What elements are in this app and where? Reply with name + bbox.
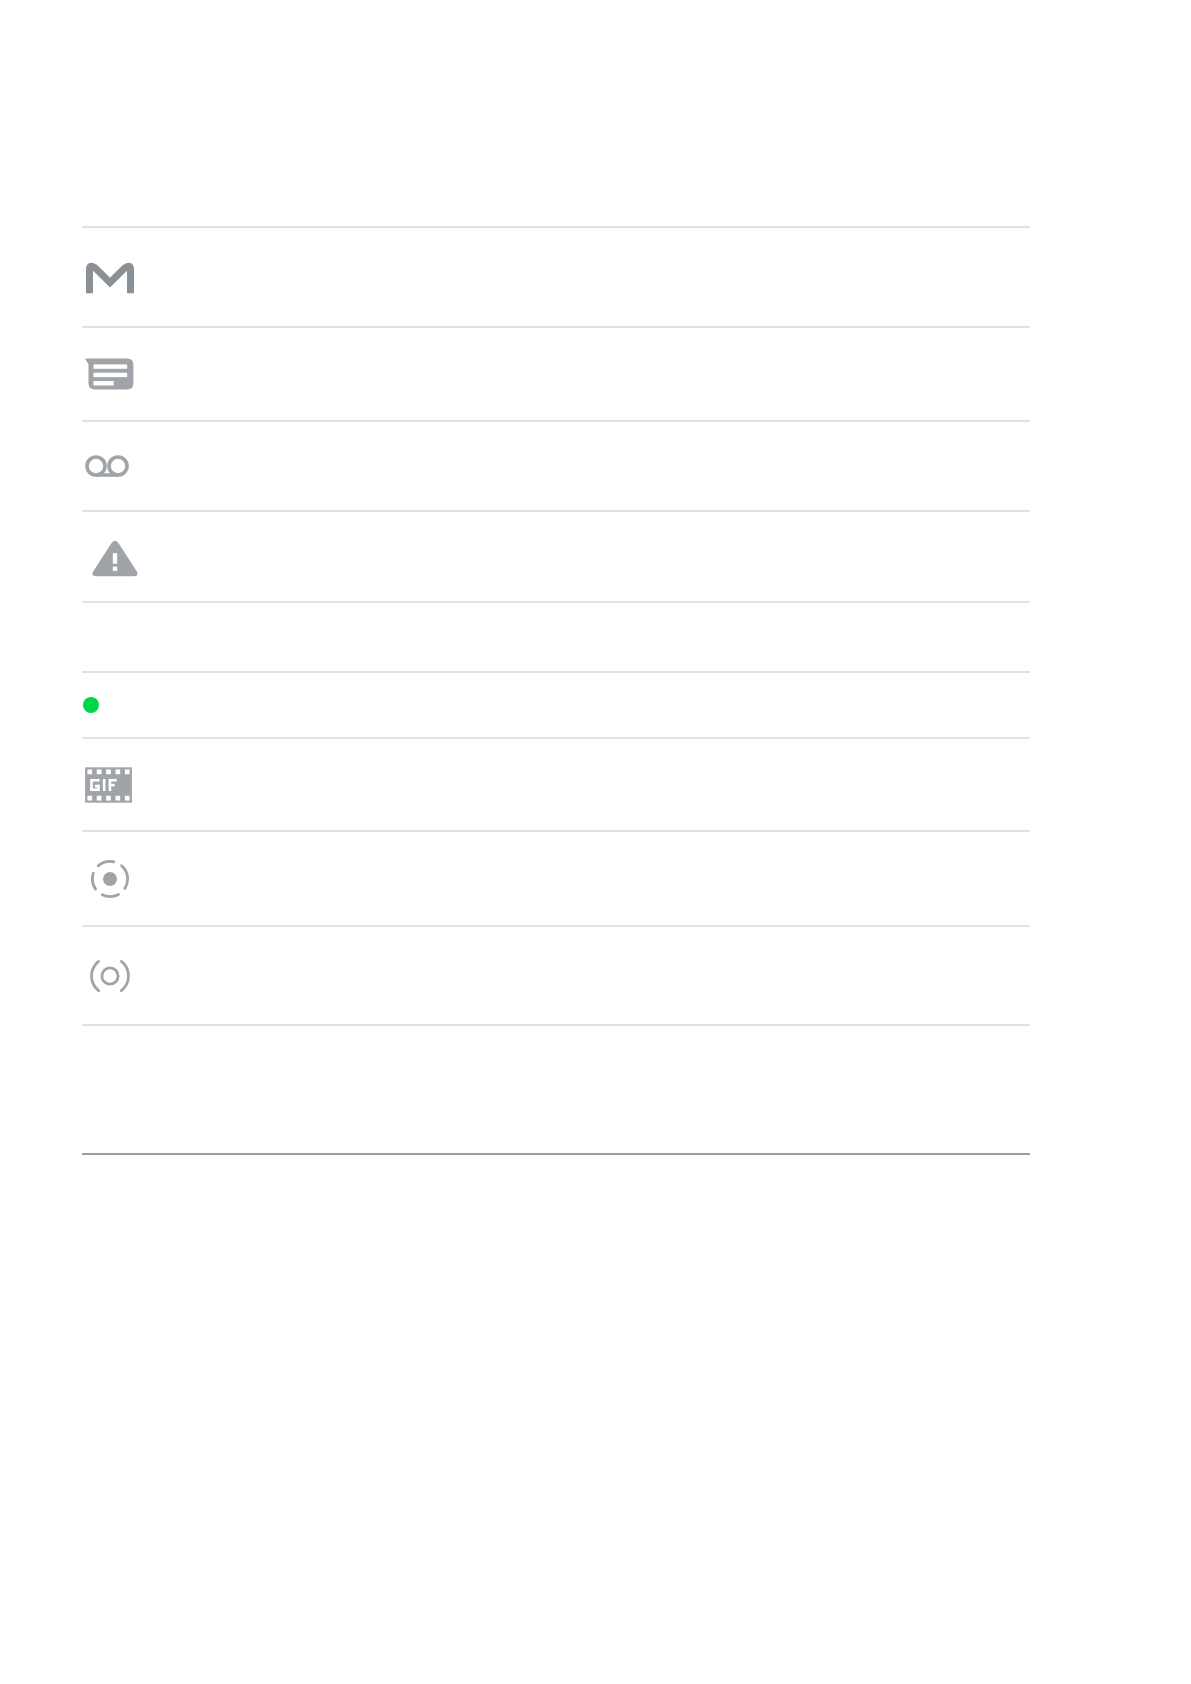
button[interactable]: Gmail xyxy=(82,228,1030,326)
button[interactable]: GIF xyxy=(82,739,1030,830)
button[interactable]: Warning xyxy=(82,512,1030,601)
button[interactable]: Messages xyxy=(82,328,1030,420)
button[interactable]: Broadcast xyxy=(82,927,1030,1024)
button[interactable]: Record xyxy=(82,832,1030,925)
button[interactable]: Online xyxy=(82,673,1030,737)
button[interactable]: Voicemail xyxy=(82,422,1030,510)
